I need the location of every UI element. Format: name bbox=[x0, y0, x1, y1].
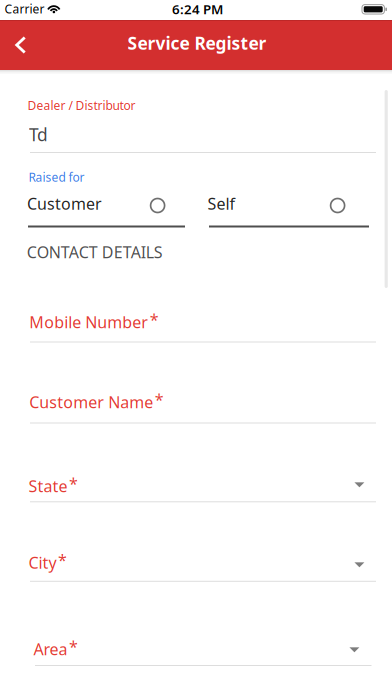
button[interactable]: City bbox=[0, 547, 392, 589]
button[interactable]: Dealer / Distributor bbox=[0, 93, 392, 157]
staticText: * bbox=[150, 309, 159, 330]
staticText: * bbox=[155, 389, 164, 410]
button[interactable]: Area bbox=[0, 633, 392, 675]
staticText: Td bbox=[29, 123, 48, 146]
button[interactable]: Back bbox=[0, 20, 44, 70]
button[interactable]: Customer bbox=[0, 190, 196, 232]
button[interactable]: Customer Name bbox=[0, 386, 392, 432]
button[interactable]: Mobile Number bbox=[0, 306, 392, 352]
staticText: * bbox=[69, 473, 78, 494]
staticText: Dealer / Distributor bbox=[27, 97, 135, 113]
staticText: Raised for bbox=[28, 169, 84, 185]
staticText: CONTACT DETAILS bbox=[27, 241, 163, 263]
button[interactable]: State bbox=[0, 470, 392, 512]
staticText: 6:24 PM bbox=[172, 0, 223, 18]
staticText: Carrier bbox=[4, 1, 44, 17]
staticText: Service Register bbox=[127, 32, 266, 55]
staticText: Mobile Number bbox=[29, 311, 148, 333]
staticText: Area bbox=[33, 638, 67, 660]
staticText: City bbox=[29, 552, 57, 573]
staticText: Customer bbox=[27, 193, 102, 214]
staticText: State bbox=[29, 475, 68, 497]
button[interactable]: Self bbox=[196, 190, 392, 232]
staticText: * bbox=[69, 636, 78, 657]
staticText: * bbox=[58, 549, 67, 570]
staticText: Customer Name bbox=[29, 391, 153, 413]
staticText: Self bbox=[207, 193, 235, 214]
